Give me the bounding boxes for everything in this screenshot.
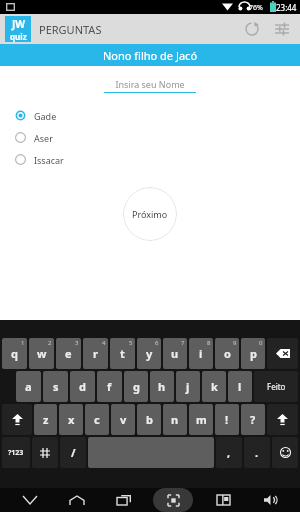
button[interactable]: j xyxy=(176,371,200,402)
staticText: o xyxy=(224,346,231,361)
staticText: 4 xyxy=(102,339,106,347)
staticText: r xyxy=(93,346,98,361)
button[interactable]: g xyxy=(124,371,148,402)
staticText: Feito xyxy=(267,381,286,392)
staticText: z xyxy=(43,412,49,427)
button[interactable]: e xyxy=(56,338,81,369)
staticText: 23:44 xyxy=(276,2,297,13)
button[interactable]: JW xyxy=(5,16,31,42)
staticText: 6 xyxy=(155,339,159,347)
staticText: m xyxy=(196,412,207,427)
staticText: t xyxy=(120,346,125,361)
button[interactable]: t xyxy=(110,338,135,369)
staticText: g xyxy=(133,379,140,394)
staticText: b xyxy=(146,412,153,427)
staticText: q xyxy=(11,346,18,361)
button[interactable]: Gade xyxy=(0,107,300,124)
staticText: e xyxy=(65,346,72,361)
staticText: c xyxy=(94,412,100,427)
staticText: 76% xyxy=(249,3,263,13)
staticText: 5 xyxy=(129,339,133,347)
button[interactable]: Input method xyxy=(32,437,58,468)
button[interactable]: d xyxy=(70,371,95,402)
staticText: ! xyxy=(225,412,229,427)
button[interactable]: i xyxy=(189,338,213,369)
staticText: y xyxy=(146,346,153,361)
staticText: l xyxy=(238,379,242,394)
button[interactable]: Shift xyxy=(267,404,298,435)
staticText: Próximo xyxy=(132,208,168,220)
button[interactable]: o xyxy=(215,338,239,369)
button[interactable]: k xyxy=(202,371,226,402)
button[interactable]: Emoji xyxy=(272,437,298,468)
staticText: 8 xyxy=(207,339,211,347)
button[interactable]: f xyxy=(97,371,122,402)
staticText: v xyxy=(120,412,127,427)
button[interactable]: . xyxy=(244,437,270,468)
staticText: 3 xyxy=(75,339,79,347)
button[interactable]: ! xyxy=(215,404,239,435)
staticText: d xyxy=(79,379,86,394)
staticText: k xyxy=(211,379,218,394)
staticText: Aser xyxy=(34,132,53,144)
button[interactable]: v xyxy=(111,404,135,435)
staticText: ?123 xyxy=(8,448,24,458)
button[interactable]: Settings xyxy=(267,14,297,44)
staticText: n xyxy=(171,412,179,427)
button[interactable]: c xyxy=(85,404,109,435)
button[interactable]: p xyxy=(241,338,265,369)
button[interactable]: n xyxy=(163,404,187,435)
button[interactable]: Hide keyboard xyxy=(13,488,47,512)
staticText: x xyxy=(68,412,75,427)
button[interactable]: h xyxy=(150,371,174,402)
button[interactable]: m xyxy=(189,404,213,435)
button[interactable]: s xyxy=(43,371,68,402)
button[interactable]: Volume xyxy=(253,488,287,512)
staticText: f xyxy=(107,379,112,394)
button[interactable]: Split screen xyxy=(206,488,240,512)
button[interactable]: Feito xyxy=(254,371,298,402)
button[interactable]: ?123 xyxy=(2,437,30,468)
button[interactable]: a xyxy=(16,371,41,402)
button[interactable]: x xyxy=(59,404,83,435)
button[interactable]: b xyxy=(137,404,161,435)
button[interactable]: Insira seu Nome xyxy=(104,78,196,93)
button[interactable]: Refresh xyxy=(237,14,267,44)
staticText: Issacar xyxy=(34,154,64,166)
button[interactable]: y xyxy=(137,338,161,369)
button[interactable]: q xyxy=(2,338,27,369)
button[interactable]: r xyxy=(83,338,108,369)
button[interactable]: Home xyxy=(60,488,94,512)
button[interactable]: Aser xyxy=(0,129,300,146)
staticText: 1 xyxy=(21,339,25,347)
staticText: JW xyxy=(12,17,25,31)
button[interactable]: Fullscreen xyxy=(153,488,193,512)
staticText: i xyxy=(199,346,203,361)
button[interactable]: Recents xyxy=(107,488,141,512)
button[interactable]: / xyxy=(60,437,86,468)
button[interactable]: Issacar xyxy=(0,151,300,168)
staticText: h xyxy=(158,379,166,394)
staticText: 9 xyxy=(233,339,237,347)
button[interactable]: ? xyxy=(241,404,265,435)
button[interactable]: z xyxy=(34,404,57,435)
button[interactable]: u xyxy=(163,338,187,369)
staticText: Nono filho de Jacó xyxy=(103,48,198,63)
staticText: quiz xyxy=(10,31,27,42)
staticText: 2 xyxy=(48,339,52,347)
button[interactable]: Backspace xyxy=(267,338,298,369)
staticText: Insira seu Nome xyxy=(104,78,196,90)
staticText: Gade xyxy=(34,110,57,122)
button[interactable]: Shift xyxy=(2,404,32,435)
staticText: w xyxy=(37,346,47,361)
staticText: / xyxy=(71,445,76,460)
staticText: p xyxy=(250,346,257,361)
staticText: PERGUNTAS xyxy=(39,22,102,37)
button[interactable]: w xyxy=(29,338,54,369)
button[interactable]: , xyxy=(216,437,242,468)
button[interactable]: Próximo xyxy=(123,187,177,241)
staticText: 7 xyxy=(181,339,185,347)
staticText: , xyxy=(227,445,231,460)
button[interactable]: l xyxy=(228,371,252,402)
